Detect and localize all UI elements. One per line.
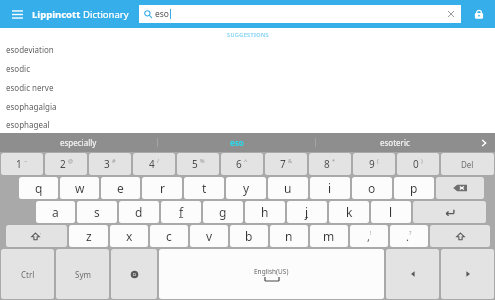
button[interactable]: u	[268, 177, 308, 199]
button[interactable]: 1	[1, 153, 43, 175]
button[interactable]: c	[150, 225, 188, 247]
button[interactable]: Menu	[6, 3, 28, 25]
button[interactable]: v	[190, 225, 228, 247]
button[interactable]: Symbols	[56, 249, 109, 299]
staticText: esoteric	[380, 137, 410, 148]
staticText: esodeviation	[6, 44, 54, 55]
button[interactable]: especially	[0, 133, 157, 152]
button[interactable]: Clear search	[446, 9, 456, 19]
staticText: w	[75, 180, 85, 196]
button[interactable]: Right	[441, 249, 494, 299]
button[interactable]: 2	[45, 153, 87, 175]
staticText: %	[200, 157, 205, 164]
button[interactable]: 3	[89, 153, 131, 175]
button[interactable]: Ctrl	[1, 249, 54, 299]
staticText: e	[117, 180, 124, 196]
button[interactable]: w	[60, 177, 99, 199]
button[interactable]: 0	[397, 153, 439, 175]
staticText: .	[406, 229, 409, 244]
staticText: x	[126, 228, 133, 244]
button[interactable]: Space	[159, 249, 384, 299]
button[interactable]: 5	[177, 153, 219, 175]
staticText: y	[243, 180, 250, 196]
button[interactable]: Shift	[6, 225, 67, 247]
staticText: z	[86, 228, 92, 244]
staticText: eso	[155, 8, 170, 20]
staticText: v	[206, 228, 213, 244]
button[interactable]: Shift right	[430, 225, 490, 247]
staticText: c	[166, 228, 172, 244]
button[interactable]: g	[203, 201, 243, 223]
staticText: ?	[409, 229, 412, 236]
staticText: *	[332, 157, 336, 164]
button[interactable]: a	[36, 201, 75, 223]
staticText: i	[328, 180, 332, 196]
staticText: )	[421, 157, 423, 164]
staticText: English(US)	[254, 267, 289, 276]
staticText: esodic	[6, 63, 31, 74]
button[interactable]: 7	[265, 153, 307, 175]
button[interactable]: r	[142, 177, 182, 199]
button[interactable]: z	[69, 225, 108, 247]
button[interactable]: 9	[353, 153, 395, 175]
staticText: g	[219, 204, 227, 220]
button[interactable]: 8	[309, 153, 351, 175]
button[interactable]: period	[390, 225, 428, 247]
staticText: /	[157, 157, 160, 164]
staticText: 4	[149, 157, 155, 171]
button[interactable]: b	[230, 225, 268, 247]
staticText: h	[261, 204, 269, 220]
button[interactable]: p	[394, 177, 434, 199]
staticText: Ctrl	[21, 269, 35, 280]
button[interactable]: comma	[350, 225, 388, 247]
button[interactable]: d	[119, 201, 159, 223]
button[interactable]: k	[329, 201, 369, 223]
staticText: ^	[244, 157, 248, 164]
button[interactable]: h	[245, 201, 285, 223]
button[interactable]: Delete	[441, 153, 494, 175]
staticText: 7	[280, 157, 286, 171]
staticText: 9	[369, 157, 375, 171]
button[interactable]: 6	[221, 153, 263, 175]
button[interactable]: Lock	[469, 4, 489, 24]
button[interactable]: l	[371, 201, 411, 223]
button[interactable]: f	[161, 201, 201, 223]
staticText: '	[40, 232, 42, 239]
button[interactable]: s	[77, 201, 117, 223]
button[interactable]: esophageal	[0, 116, 495, 133]
staticText: q	[35, 180, 43, 196]
button[interactable]: t	[184, 177, 224, 199]
staticText: ,	[367, 229, 370, 244]
staticText: 6	[236, 157, 242, 171]
button[interactable]: esoteric	[316, 133, 473, 152]
staticText: j	[305, 204, 309, 220]
button[interactable]: n	[270, 225, 308, 247]
staticText: Dictionary	[83, 8, 129, 21]
staticText: eso	[230, 137, 244, 148]
button[interactable]: Left	[386, 249, 439, 299]
button[interactable]: esodic nerve	[0, 78, 495, 97]
staticText: (	[377, 157, 379, 164]
staticText: 0	[413, 157, 419, 171]
staticText: s	[94, 204, 100, 220]
button[interactable]: Keyboard settings	[111, 249, 157, 299]
button[interactable]: 4	[133, 153, 175, 175]
button[interactable]: esodeviation	[0, 40, 495, 59]
button[interactable]: x	[110, 225, 148, 247]
button[interactable]: Backspace	[436, 177, 484, 199]
button[interactable]: More suggestions	[473, 133, 495, 152]
staticText: Lippincott	[32, 8, 83, 21]
button[interactable]: j	[287, 201, 327, 223]
button[interactable]: o	[352, 177, 392, 199]
staticText: !	[370, 229, 372, 236]
button[interactable]: q	[19, 177, 58, 199]
button[interactable]: m	[310, 225, 348, 247]
button[interactable]: eso	[139, 5, 461, 23]
button[interactable]: i	[310, 177, 350, 199]
button[interactable]: esodic	[0, 59, 495, 78]
button[interactable]: e	[101, 177, 140, 199]
button[interactable]: eso	[158, 133, 315, 152]
button[interactable]: esophagalgia	[0, 97, 495, 116]
button[interactable]: y	[226, 177, 266, 199]
button[interactable]: Enter	[413, 201, 486, 223]
